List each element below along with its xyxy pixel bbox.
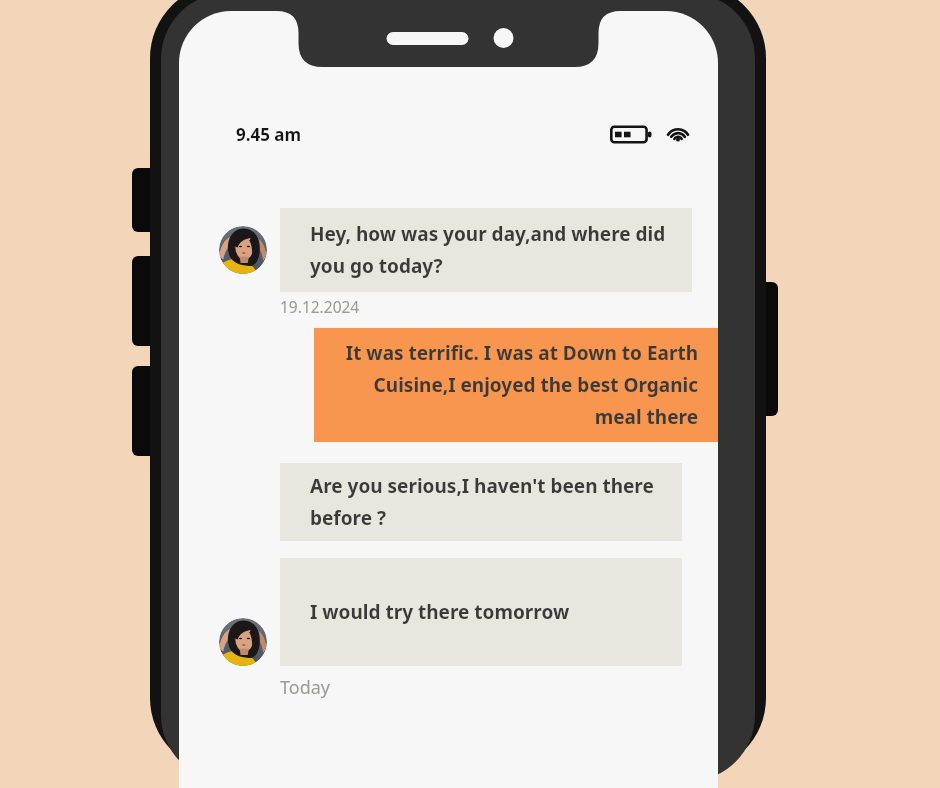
staticText: Are you serious,I haven't been there bef… [310, 473, 674, 531]
button[interactable]: Are you serious,I haven't been there bef… [280, 463, 682, 541]
staticText: 9.45 am [236, 123, 302, 146]
staticText: It was terrific. I was at Down to Earth … [334, 340, 698, 430]
other: Wi-Fi [665, 124, 691, 145]
button[interactable]: Contact avatar [219, 618, 267, 666]
button[interactable]: Contact avatar [179, 208, 718, 292]
button[interactable]: I would try there tomorrow [280, 558, 682, 666]
other: Battery [610, 124, 652, 145]
staticText: Today [280, 675, 330, 700]
staticText: 19.12.2024 [280, 296, 360, 317]
staticText: Hey, how was your day,and where did you … [310, 221, 684, 279]
button[interactable]: Contact avatar [219, 226, 267, 274]
staticText: I would try there tomorrow [310, 599, 570, 625]
button[interactable]: It was terrific. I was at Down to Earth … [314, 328, 718, 442]
